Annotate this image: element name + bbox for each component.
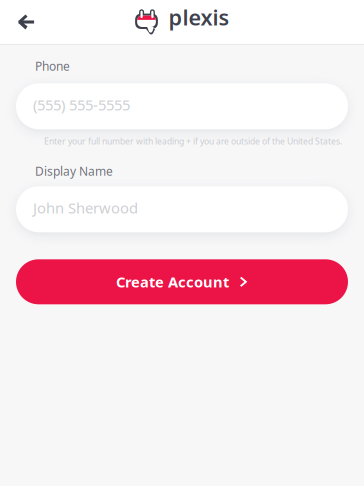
- button[interactable]: Create Account: [16, 259, 348, 304]
- staticText: (555) 555-5555: [33, 95, 130, 115]
- staticText: Enter your full number with leading + if…: [44, 135, 342, 147]
- staticText: Display Name: [35, 163, 113, 179]
- button[interactable]: Back: [0, 0, 48, 44]
- staticText: Phone: [35, 58, 70, 74]
- staticText: Create Account: [116, 272, 229, 292]
- staticText: plexis: [168, 2, 229, 32]
- staticText: John Sherwood: [33, 198, 138, 218]
